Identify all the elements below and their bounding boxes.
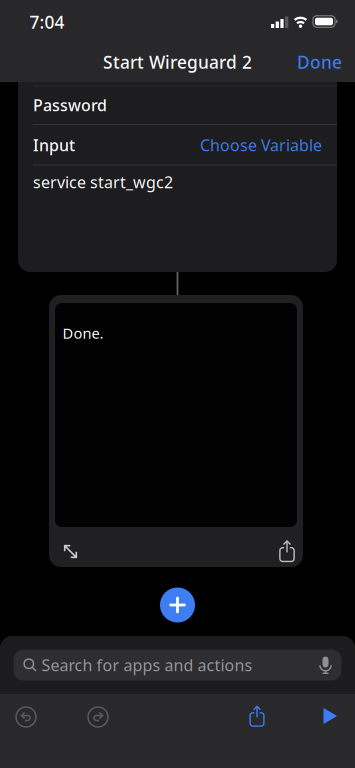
button[interactable]: Run bbox=[322, 707, 338, 725]
button[interactable]: Search for apps and actions bbox=[13, 649, 341, 680]
staticText: Input bbox=[33, 134, 75, 156]
button[interactable]: Done bbox=[272, 47, 342, 77]
button[interactable]: Undo bbox=[15, 706, 37, 728]
staticText: 7:04 bbox=[29, 10, 64, 33]
staticText: Done. bbox=[62, 323, 103, 343]
button[interactable]: Expand bbox=[60, 541, 80, 561]
button[interactable]: Share Output bbox=[277, 539, 296, 562]
button[interactable]: Choose Variable bbox=[122, 133, 322, 157]
staticText: service start_wgc2 bbox=[33, 171, 173, 193]
button[interactable]: Add Action bbox=[160, 587, 195, 622]
staticText: Start Wireguard 2 bbox=[103, 50, 252, 73]
staticText: Password bbox=[33, 94, 107, 116]
button[interactable]: Share bbox=[247, 704, 266, 727]
staticText: Done bbox=[297, 50, 342, 73]
staticText: Choose Variable bbox=[200, 134, 322, 156]
staticText: Search for apps and actions bbox=[41, 654, 252, 676]
button[interactable]: Redo bbox=[87, 706, 109, 728]
button[interactable]: Dictation bbox=[319, 655, 332, 674]
